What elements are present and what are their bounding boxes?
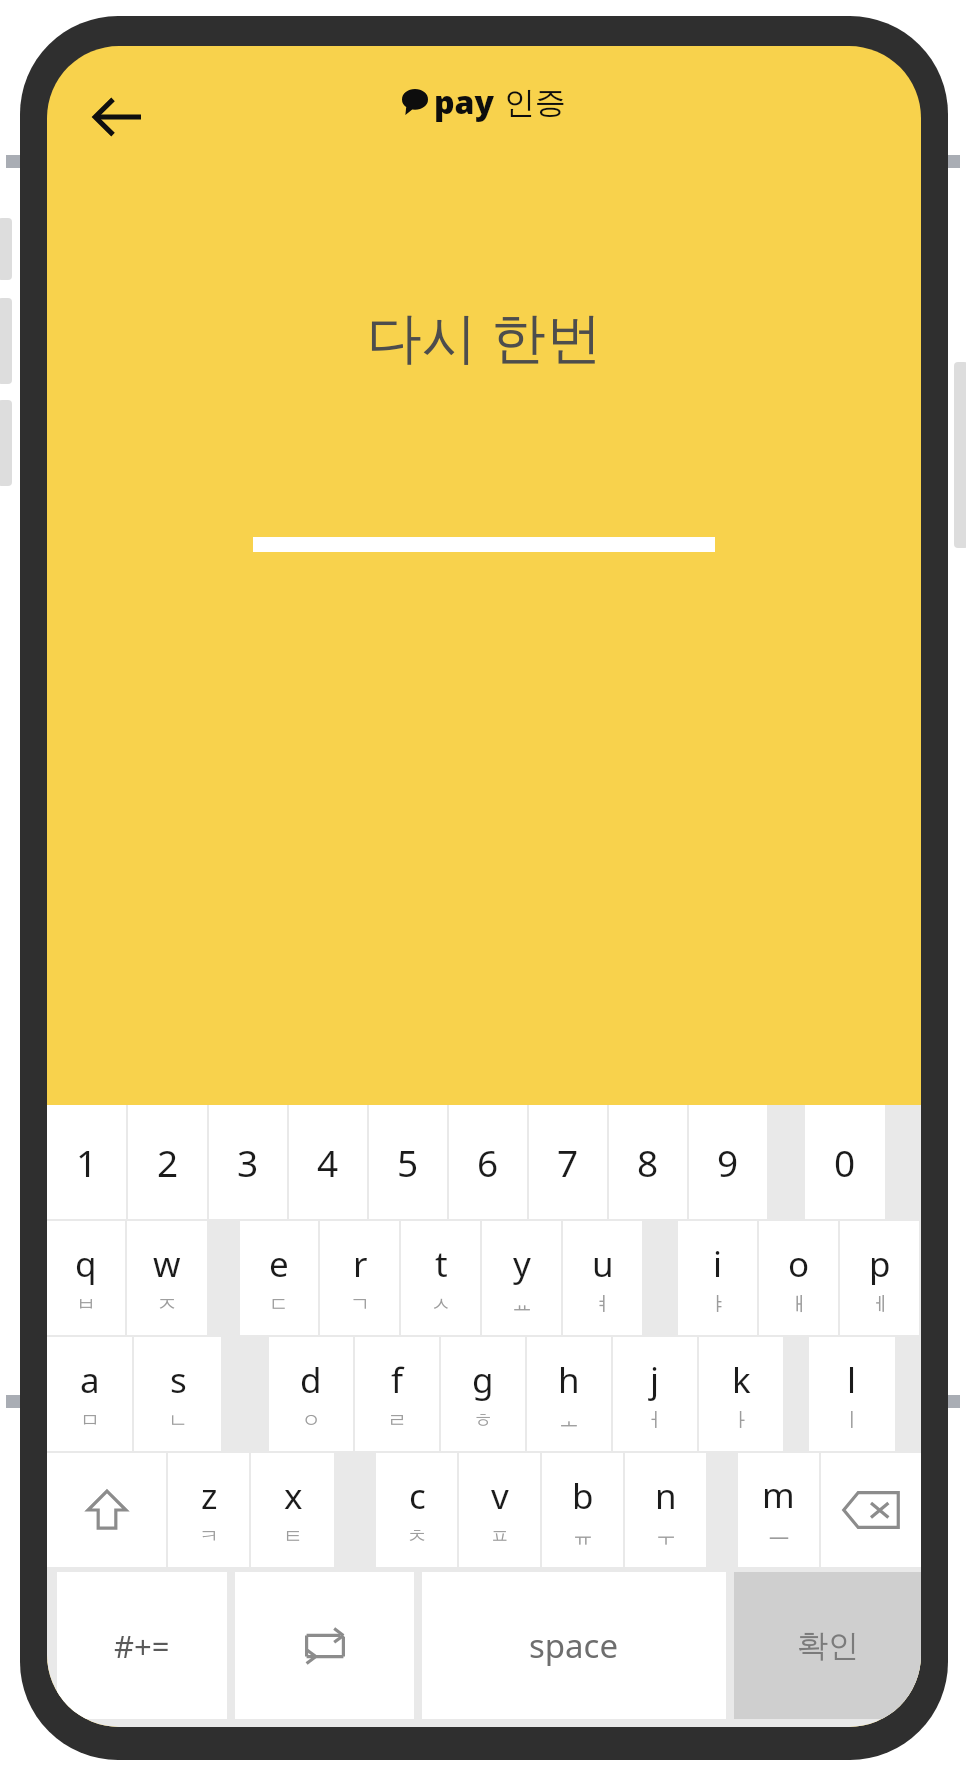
staticText: ㄴ [168, 1408, 188, 1433]
button[interactable]: x [251, 1453, 334, 1567]
button[interactable]: i [678, 1221, 757, 1335]
button[interactable]: Shift [47, 1453, 166, 1567]
button[interactable]: 확인 [734, 1572, 921, 1719]
staticText: 0 [834, 1137, 856, 1187]
button[interactable]: Change keyboard [235, 1572, 414, 1719]
staticText: space [529, 1623, 619, 1668]
button[interactable]: Back [77, 77, 157, 157]
button[interactable]: o [759, 1221, 838, 1335]
staticText: p [869, 1240, 891, 1288]
staticText: ㅎ [473, 1408, 493, 1433]
staticText: ㄱ [350, 1292, 370, 1317]
staticText: ㅁ [80, 1408, 100, 1433]
staticText: 5 [397, 1137, 419, 1187]
button[interactable]: a [47, 1337, 132, 1451]
staticText: r [353, 1240, 368, 1288]
button[interactable]: t [401, 1221, 480, 1335]
button[interactable]: w [127, 1221, 207, 1335]
button[interactable]: b [542, 1453, 623, 1567]
button[interactable]: 1 [47, 1105, 126, 1219]
button[interactable]: 9 [689, 1105, 767, 1219]
staticText: ㅛ [512, 1292, 532, 1317]
staticText: ㅏ [731, 1408, 751, 1433]
staticText: ㅑ [708, 1292, 728, 1317]
staticText: t [435, 1240, 448, 1288]
staticText: b [572, 1472, 594, 1520]
button[interactable]: c [376, 1453, 457, 1567]
staticText: ㄹ [387, 1408, 407, 1433]
button[interactable]: 5 [369, 1105, 447, 1219]
staticText: k [732, 1356, 751, 1404]
staticText: pay [434, 80, 495, 124]
staticText: w [153, 1240, 181, 1288]
staticText: a [80, 1356, 100, 1404]
staticText: ㄷ [269, 1292, 289, 1317]
staticText: 인증 [504, 83, 566, 122]
staticText: ㅊ [407, 1524, 427, 1549]
button[interactable]: f [355, 1337, 439, 1451]
staticText: ㅂ [76, 1292, 96, 1317]
staticText: 7 [557, 1137, 579, 1187]
button[interactable]: Backspace [821, 1453, 921, 1567]
staticText: 8 [637, 1137, 659, 1187]
button[interactable]: n [625, 1453, 706, 1567]
button[interactable]: j [613, 1337, 697, 1451]
button[interactable]: l [809, 1337, 895, 1451]
button[interactable]: 8 [609, 1105, 687, 1219]
staticText: j [650, 1356, 660, 1404]
staticText: ㅕ [593, 1292, 613, 1317]
staticText: ㅣ [842, 1408, 862, 1433]
staticText: ㅜ [656, 1524, 676, 1549]
staticText: y [513, 1240, 531, 1288]
staticText: ㅓ [645, 1408, 665, 1433]
staticText: ㅠ [573, 1524, 593, 1549]
staticText: h [558, 1356, 580, 1404]
staticText: 6 [477, 1137, 499, 1187]
button[interactable]: d [269, 1337, 353, 1451]
button[interactable]: r [320, 1221, 399, 1335]
button[interactable]: u [563, 1221, 642, 1335]
staticText: 1 [76, 1137, 98, 1187]
button[interactable]: #+= [57, 1572, 227, 1719]
staticText: 9 [717, 1137, 739, 1187]
button[interactable]: space [422, 1572, 726, 1719]
button[interactable]: q [47, 1221, 125, 1335]
staticText: g [472, 1356, 494, 1404]
staticText: z [201, 1472, 218, 1520]
staticText: m [762, 1471, 795, 1519]
staticText: i [713, 1240, 723, 1288]
staticText: #+= [114, 1625, 170, 1667]
staticText: ㅋ [199, 1524, 219, 1549]
staticText: 2 [157, 1137, 179, 1187]
staticText: ㅌ [283, 1524, 303, 1549]
button[interactable]: z [168, 1453, 249, 1567]
button[interactable]: 2 [128, 1105, 207, 1219]
staticText: 4 [317, 1137, 339, 1187]
staticText: v [491, 1472, 509, 1520]
button[interactable]: p [840, 1221, 919, 1335]
button[interactable]: h [527, 1337, 611, 1451]
staticText: ㅐ [789, 1292, 809, 1317]
staticText: q [75, 1240, 97, 1288]
staticText: e [269, 1240, 289, 1288]
staticText: 다시 한번 [367, 298, 602, 373]
staticText: ㅅ [431, 1292, 451, 1317]
staticText: ㅍ [490, 1524, 510, 1549]
button[interactable]: 0 [805, 1105, 885, 1219]
button[interactable]: 3 [209, 1105, 287, 1219]
staticText: 3 [237, 1137, 259, 1187]
staticText: ㅗ [559, 1408, 579, 1433]
button[interactable]: s [134, 1337, 221, 1451]
button[interactable]: g [441, 1337, 525, 1451]
button[interactable]: e [240, 1221, 318, 1335]
button[interactable]: 7 [529, 1105, 607, 1219]
button[interactable]: k [699, 1337, 783, 1451]
staticText: x [284, 1472, 303, 1520]
staticText: d [300, 1356, 322, 1404]
button[interactable]: y [482, 1221, 561, 1335]
button[interactable]: 4 [289, 1105, 367, 1219]
button[interactable]: m [738, 1453, 819, 1567]
button[interactable]: v [459, 1453, 540, 1567]
staticText: s [170, 1356, 187, 1404]
button[interactable]: 6 [449, 1105, 527, 1219]
